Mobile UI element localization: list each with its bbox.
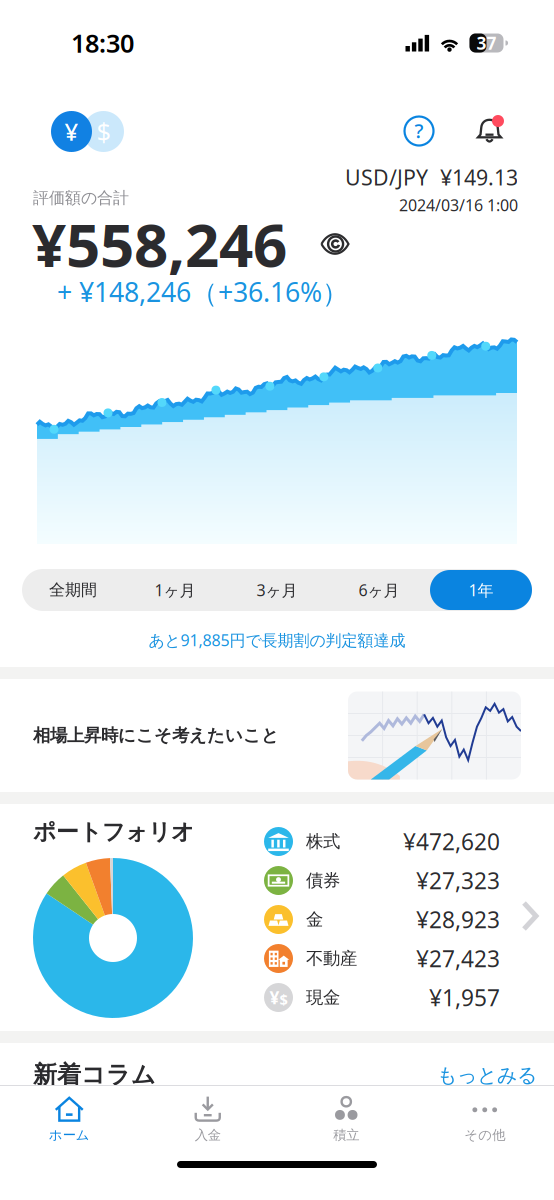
- staticText: ¥27,423: [416, 943, 500, 973]
- staticText: 評価額の合計: [33, 188, 129, 208]
- button[interactable]: 相場上昇時にこそ考えたいこと: [33, 679, 521, 792]
- staticText: 株式: [306, 831, 340, 852]
- staticText: 18:30: [71, 26, 134, 60]
- button[interactable]: もっとみる: [437, 1063, 537, 1088]
- staticText: 1ヶ月: [154, 579, 195, 601]
- button[interactable]: 1ヶ月: [124, 570, 226, 610]
- staticText: ポートフォリオ: [33, 818, 194, 846]
- button[interactable]: 入金: [138, 1087, 277, 1149]
- staticText: 全期間: [49, 580, 97, 600]
- button[interactable]: 3ヶ月: [226, 570, 328, 610]
- staticText: ¥28,923: [416, 904, 500, 934]
- button[interactable]: Hide balance: [320, 233, 350, 255]
- staticText: その他: [464, 1127, 505, 1143]
- staticText: $: [279, 989, 287, 1009]
- button[interactable]: ホーム: [0, 1087, 138, 1149]
- button[interactable]: 1年: [430, 570, 532, 610]
- staticText: $: [96, 115, 110, 148]
- button[interactable]: あと91,885円で長期割の判定額達成: [0, 625, 554, 655]
- staticText: 3ヶ月: [256, 579, 297, 601]
- staticText: USD/JPY ¥149.13: [345, 163, 518, 191]
- staticText: あと91,885円で長期割の判定額達成: [148, 629, 405, 651]
- staticText: ¥1,957: [429, 982, 500, 1012]
- staticText: ?: [414, 117, 423, 144]
- staticText: 積立: [333, 1127, 359, 1143]
- staticText: もっとみる: [437, 1063, 537, 1088]
- button[interactable]: 積立: [277, 1087, 415, 1149]
- staticText: 入金: [195, 1127, 221, 1143]
- button[interactable]: Switch currency: [35, 111, 108, 152]
- button[interactable]: 全期間: [22, 570, 124, 610]
- button[interactable]: その他: [415, 1087, 554, 1149]
- staticText: 2024/03/16 1:00: [399, 194, 518, 215]
- staticText: ¥27,323: [416, 865, 500, 895]
- button[interactable]: Help: [404, 116, 434, 146]
- staticText: 相場上昇時にこそ考えたいこと: [33, 725, 279, 746]
- button[interactable]: Notifications: [472, 115, 507, 146]
- staticText: ¥: [64, 116, 78, 147]
- staticText: 6ヶ月: [358, 579, 399, 601]
- staticText: + ¥148,246（+36.16%）: [57, 274, 349, 310]
- staticText: 現金: [306, 987, 340, 1008]
- staticText: ホーム: [49, 1127, 90, 1143]
- staticText: 37: [476, 31, 496, 54]
- staticText: ¥558,246: [32, 204, 287, 284]
- button[interactable]: 6ヶ月: [328, 570, 430, 610]
- staticText: ¥472,620: [403, 826, 500, 856]
- staticText: ¥: [269, 986, 279, 1009]
- staticText: 不動産: [306, 948, 357, 969]
- staticText: 新着コラム: [33, 1060, 156, 1089]
- staticText: 金: [306, 909, 323, 930]
- staticText: 債券: [306, 870, 340, 891]
- staticText: 1年: [468, 579, 493, 601]
